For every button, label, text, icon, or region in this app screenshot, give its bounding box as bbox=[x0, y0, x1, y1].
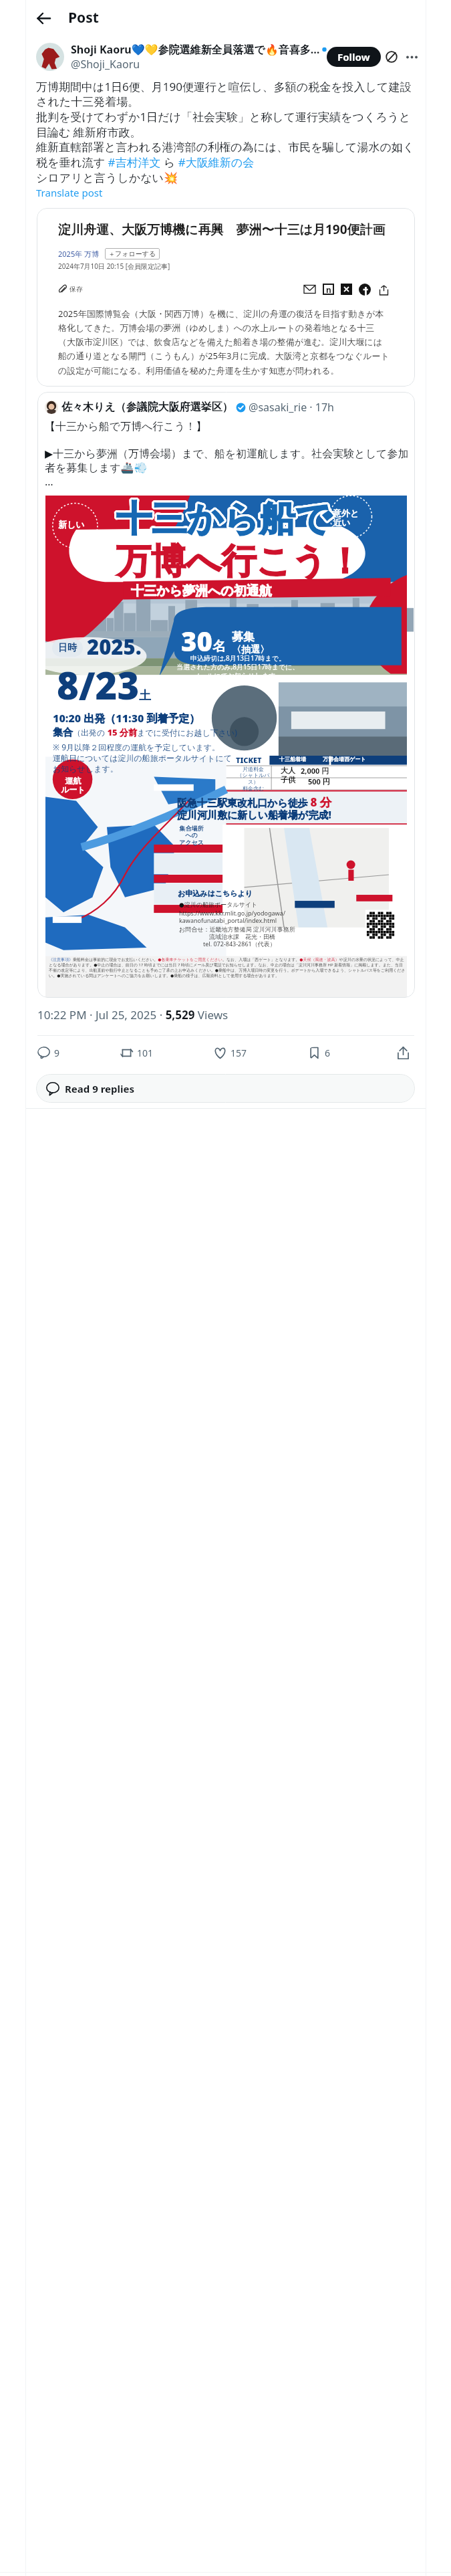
staticText: 《注意事項》乗船料金は事前的に現金でお支払いください。●各乗車チケットをご用意く… bbox=[49, 957, 407, 978]
button[interactable]: Profile photo bbox=[36, 43, 64, 71]
staticText: 十三から船で bbox=[117, 497, 332, 542]
staticText: 集合（出発の 15 分前までに受付にお越し下さい) bbox=[53, 726, 237, 739]
staticText: 十三から船で bbox=[114, 496, 329, 541]
staticText: 2025年国際博覧会（大阪・関西万博）を機に、淀川の舟運の復活を目指す動きが本格… bbox=[58, 308, 390, 377]
staticText: ＋フォローする bbox=[108, 249, 156, 258]
staticText: 十三から船で bbox=[116, 496, 331, 541]
button[interactable]: Share on Facebook bbox=[359, 284, 371, 296]
staticText: 十三から船で bbox=[116, 497, 331, 542]
staticText: 157 bbox=[231, 1047, 247, 1059]
button[interactable]: 淀川舟運、大阪万博機に再興 夢洲〜十三は月190便計画 bbox=[37, 208, 415, 387]
staticText: 土 bbox=[139, 688, 151, 704]
button[interactable]: 佐々木りえ（参議院大阪府選挙区） bbox=[37, 392, 415, 998]
staticText: 万博へ行こう！ bbox=[116, 540, 362, 584]
button[interactable]: Translate post bbox=[36, 186, 103, 199]
staticText: 十三から船で bbox=[116, 498, 331, 543]
staticText: @Shoji_Kaoru bbox=[71, 57, 140, 72]
button[interactable]: Share by email bbox=[303, 283, 316, 296]
staticText: Post bbox=[68, 8, 99, 27]
button[interactable]: Mute bbox=[381, 46, 402, 68]
staticText: 2025年 万博 bbox=[58, 249, 100, 259]
button[interactable]: Read 9 replies bbox=[36, 1074, 415, 1103]
staticText: 十三から船で bbox=[117, 498, 332, 543]
staticText: Read 9 replies bbox=[65, 1082, 134, 1095]
button[interactable]: Share on note bbox=[323, 284, 334, 295]
staticText: 十三から船で bbox=[115, 498, 330, 543]
button[interactable]: 157 bbox=[214, 1047, 247, 1059]
staticText: 十三から船で bbox=[115, 496, 330, 541]
staticText: 2,000 円 500 円 bbox=[301, 766, 330, 786]
button[interactable]: Share bbox=[378, 284, 390, 296]
staticText: 十三から船で bbox=[118, 497, 333, 542]
staticText: 募集 bbox=[232, 630, 255, 644]
staticText: 淀川舟運、大阪万博機に再興 夢洲〜十三は月190便計画 bbox=[58, 221, 386, 238]
staticText: 【十三から船で万博へ行こう！】 ▶十三から夢洲（万博会場）まで、船を初運航します… bbox=[45, 420, 410, 488]
staticText: 新しい bbox=[58, 519, 85, 530]
staticText: 十三から船で bbox=[116, 499, 331, 544]
staticText: 十三から船で bbox=[116, 496, 331, 540]
staticText: Follow bbox=[337, 50, 370, 64]
staticText: お申込みはこちらより bbox=[178, 889, 253, 898]
staticText: 十三から船で bbox=[118, 496, 333, 540]
staticText: 十三から船で bbox=[117, 499, 332, 544]
button[interactable]: Share bbox=[392, 1041, 414, 1064]
staticText: 十三から船で bbox=[116, 499, 331, 544]
staticText: 2025. bbox=[87, 633, 142, 661]
staticText: 十三から船で bbox=[116, 496, 331, 541]
staticText: 申込締切は,8月13日17時まで。 当選された方のみ,8月15日17時までに、 … bbox=[176, 653, 299, 680]
button[interactable]: 保存 bbox=[58, 285, 83, 294]
staticText: 十三から船で bbox=[116, 496, 331, 540]
staticText: 十三から船で bbox=[118, 496, 333, 541]
staticText: 十三から船で bbox=[114, 497, 329, 542]
button[interactable]: Follow bbox=[327, 47, 381, 67]
staticText: 意外と 近い bbox=[333, 508, 359, 528]
staticText: 万博会場西ゲート bbox=[323, 756, 366, 762]
staticText: 十三から船で bbox=[117, 496, 332, 541]
staticText: 十三から船で bbox=[116, 495, 331, 540]
staticText: 十三から船で bbox=[118, 498, 333, 542]
staticText: Shoji Kaoru💙💛参院選維新全員落選で🔥音喜多… bbox=[71, 42, 320, 57]
staticText: 101 bbox=[137, 1047, 154, 1059]
staticText: 十三から船で bbox=[118, 498, 333, 542]
button[interactable]: 9 bbox=[37, 1047, 60, 1059]
staticText: 十三から船で bbox=[115, 496, 330, 540]
staticText: 十三から船で bbox=[118, 498, 333, 543]
button[interactable]: Share on X bbox=[341, 284, 352, 295]
staticText: 十三船着場 bbox=[279, 756, 306, 762]
staticText: 十三から船で bbox=[115, 498, 330, 542]
staticText: 万博期間中は1日6便、月190便運行と喧伝し、多額の税金を投入して建設された十三… bbox=[36, 79, 420, 185]
staticText: 10:20 出発（11:30 到着予定） bbox=[53, 711, 200, 726]
button[interactable]: 101 bbox=[120, 1047, 154, 1059]
staticText: ●淀川の船旅ポータルサイト bbox=[179, 901, 258, 908]
staticText: 阪急十三駅東改札口から徒歩 8 分 bbox=[177, 794, 331, 810]
staticText: 30 bbox=[181, 623, 212, 659]
staticText: https://www.kkr.mlit.go.jp/yodogawa/ kaw… bbox=[179, 909, 285, 924]
staticText: 十三から船で bbox=[117, 495, 332, 540]
staticText: 〈抽選〉 bbox=[232, 644, 269, 656]
staticText: TICKET bbox=[236, 755, 262, 765]
staticText: 大人 子供 bbox=[281, 766, 295, 784]
staticText: 十三から船で bbox=[116, 498, 331, 542]
button[interactable]: ＋フォローする bbox=[105, 248, 160, 259]
staticText: 十三から船で bbox=[117, 498, 332, 542]
staticText: 運航 ルート bbox=[61, 776, 86, 795]
staticText: お問合せ：近畿地方整備局 淀川河川事務所 流域治水課 花光・田橋 tel. 07… bbox=[179, 925, 295, 948]
button[interactable]: 6 bbox=[308, 1047, 331, 1059]
staticText: 佐々木りえ（参議院大阪府選挙区） bbox=[61, 401, 233, 414]
staticText: 十三から夢洲への初通航 bbox=[131, 583, 272, 599]
staticText: 片道料金 （シャトルバス） 料金含む bbox=[233, 766, 273, 792]
staticText: Translate post bbox=[36, 186, 103, 199]
staticText: 淀川河川敷に新しい船着場が完成! bbox=[177, 808, 331, 821]
staticText: 十三から船で bbox=[114, 498, 329, 542]
button[interactable]: Back bbox=[31, 6, 55, 30]
staticText: 保存 bbox=[69, 285, 83, 294]
staticText: 2024年7月10日 20:15 [会員限定記事] bbox=[58, 261, 170, 271]
staticText: 十三から船で bbox=[118, 496, 333, 541]
button[interactable]: More options bbox=[402, 47, 421, 66]
staticText: 名 bbox=[212, 638, 226, 655]
staticText: 十三から船で bbox=[117, 496, 332, 540]
staticText: 十三から船で bbox=[116, 498, 331, 543]
staticText: ※ 9月以降２回程度の運航を予定しています。 運航日については淀川の船旅ポータル… bbox=[53, 742, 232, 774]
staticText: 集合場所 への アクセス bbox=[179, 825, 204, 847]
staticText: 十三から船で bbox=[118, 497, 333, 542]
